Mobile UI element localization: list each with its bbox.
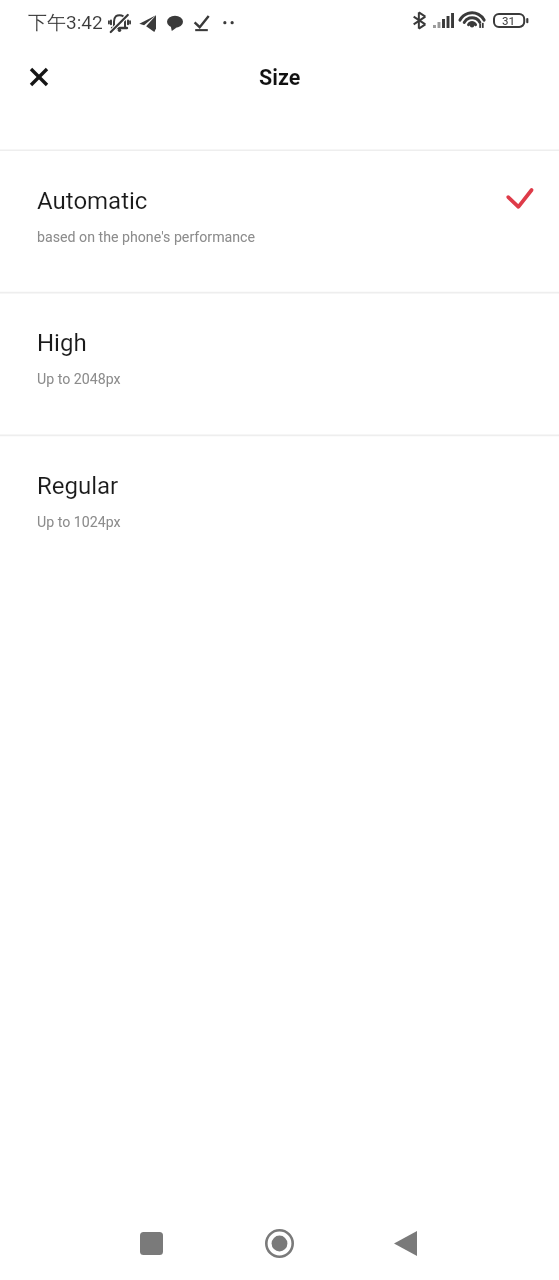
staticText: based on the phone's performance [37, 229, 256, 246]
staticText: 下午3:42 [28, 11, 103, 35]
button[interactable]: Back [381, 1219, 429, 1267]
staticText: 31 [502, 14, 516, 27]
button[interactable]: Home [255, 1219, 303, 1267]
staticText: High [37, 329, 87, 357]
button[interactable]: High [0, 292, 559, 434]
button[interactable]: Automatic [0, 150, 559, 292]
button[interactable]: Regular [0, 435, 559, 577]
staticText: Automatic [37, 187, 148, 215]
staticText: Size [259, 65, 301, 90]
button[interactable]: Recent apps [127, 1219, 175, 1267]
staticText: Up to 1024px [37, 514, 121, 531]
staticText: Up to 2048px [37, 371, 121, 388]
button[interactable]: Close [15, 53, 63, 101]
staticText: Regular [37, 472, 119, 500]
